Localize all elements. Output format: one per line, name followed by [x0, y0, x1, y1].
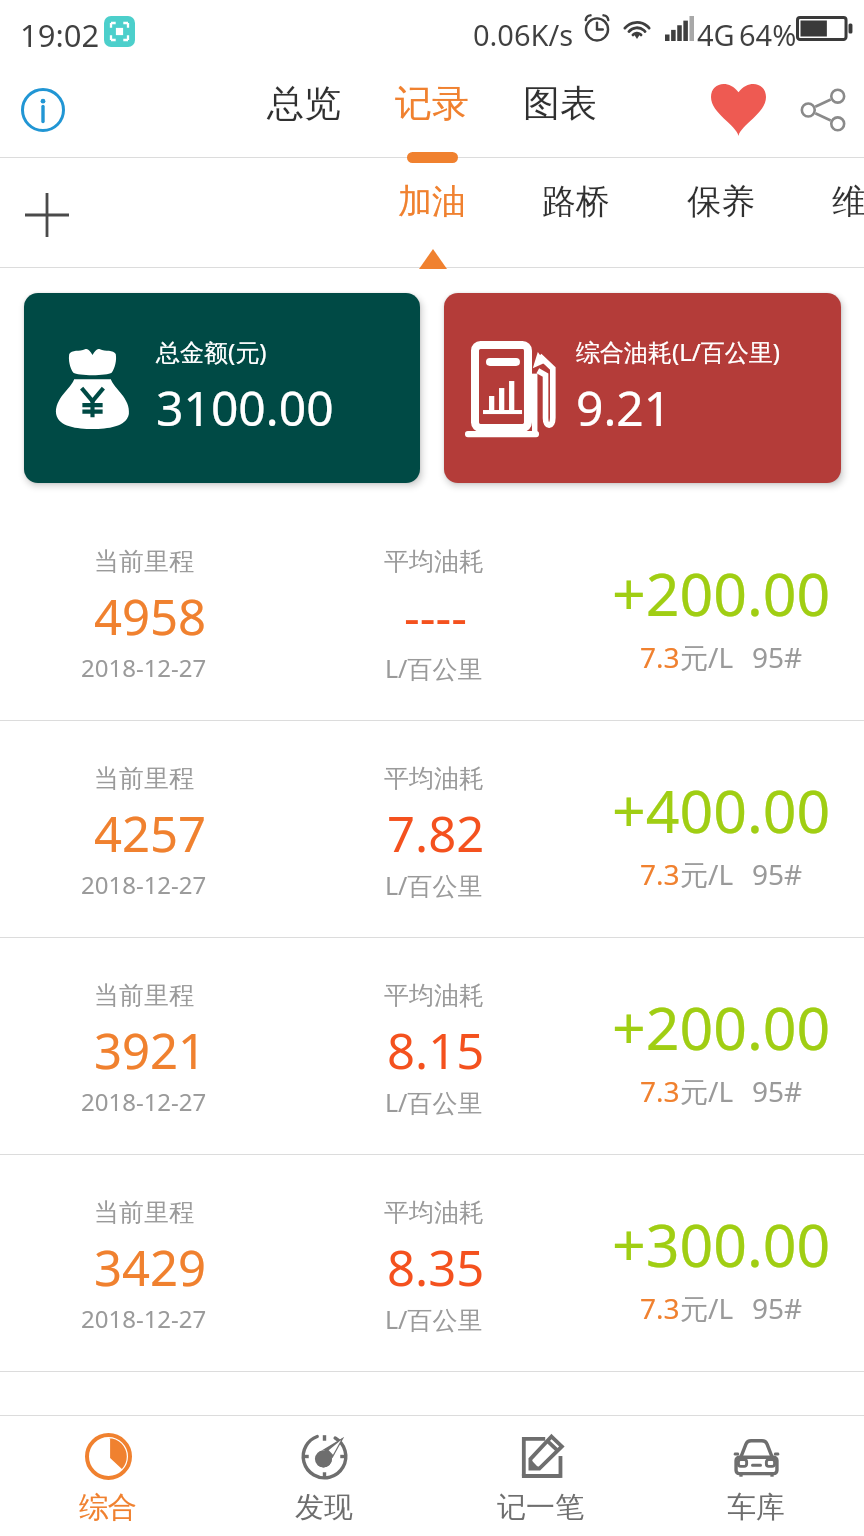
staticText: 3100.00	[156, 375, 334, 440]
button[interactable]: 车库	[648, 1416, 864, 1536]
button[interactable]: 当前里程	[0, 504, 864, 721]
staticText: 平均油耗	[384, 1197, 484, 1228]
staticText: L/百公里	[385, 1085, 483, 1119]
staticText: 7.3	[640, 1072, 680, 1110]
staticText: 64%	[739, 15, 797, 54]
staticText: 2018-12-27	[81, 868, 207, 901]
staticText: L/百公里	[385, 651, 483, 685]
staticText: 4257	[94, 800, 207, 867]
staticText: 总金额(元)	[156, 335, 267, 368]
button[interactable]: 发现	[216, 1416, 432, 1536]
staticText: 综合油耗(L/百公里)	[576, 335, 780, 368]
staticText: 2018-12-27	[81, 1302, 207, 1335]
staticText: 3429	[94, 1234, 207, 1301]
staticText: 7.3	[640, 855, 680, 893]
staticText: 95#	[752, 638, 803, 676]
button[interactable]: 当前里程	[0, 938, 864, 1155]
staticText: 平均油耗	[384, 980, 484, 1011]
staticText: 当前里程	[94, 980, 194, 1011]
staticText: 维修	[832, 180, 864, 223]
button[interactable]: 当前里程	[0, 721, 864, 938]
staticText: 0.06K/s	[473, 15, 574, 54]
staticText: 加油	[398, 180, 466, 223]
staticText: 7.82	[387, 800, 485, 867]
staticText: +200.00	[612, 987, 831, 1067]
staticText: 7.3	[640, 1289, 680, 1327]
staticText: 95#	[752, 855, 803, 893]
button[interactable]: 综合油耗(L/百公里)	[444, 293, 841, 483]
button[interactable]: 维修	[816, 158, 864, 267]
staticText: 7.3	[640, 638, 680, 676]
button[interactable]: Favorite	[696, 62, 780, 157]
staticText: 记一笔	[497, 1489, 584, 1526]
staticText: 95#	[752, 1072, 803, 1110]
staticText: 元/L	[680, 1289, 734, 1327]
staticText: 9.21	[576, 375, 672, 440]
button[interactable]: 记一笔	[432, 1416, 648, 1536]
staticText: L/百公里	[385, 1302, 483, 1336]
staticText: 3921	[94, 1017, 207, 1084]
staticText: 总览	[267, 80, 341, 127]
staticText: L/百公里	[385, 868, 483, 902]
staticText: 8.35	[387, 1234, 485, 1301]
staticText: 平均油耗	[384, 763, 484, 794]
button[interactable]: 记录	[377, 62, 487, 158]
staticText: 综合	[79, 1489, 137, 1526]
staticText: 图表	[523, 80, 597, 127]
button[interactable]: 综合	[0, 1416, 216, 1536]
button[interactable]: 总金额(元)	[24, 293, 420, 483]
button[interactable]: 图表	[505, 62, 615, 158]
staticText: 95#	[752, 1289, 803, 1327]
staticText: 车库	[727, 1489, 785, 1526]
button[interactable]: 保养	[671, 158, 771, 267]
staticText: 元/L	[680, 638, 734, 676]
staticText: 当前里程	[94, 546, 194, 577]
staticText: 2018-12-27	[81, 651, 207, 684]
staticText: ----	[404, 583, 468, 650]
staticText: 记录	[395, 80, 469, 127]
button[interactable]: 总览	[249, 62, 359, 158]
staticText: 保养	[687, 180, 755, 223]
staticText: 19:02	[20, 14, 100, 56]
staticText: 发现	[295, 1489, 353, 1526]
staticText: 元/L	[680, 1072, 734, 1110]
staticText: +300.00	[612, 1204, 831, 1284]
staticText: 当前里程	[94, 1197, 194, 1228]
staticText: 平均油耗	[384, 546, 484, 577]
button[interactable]: 当前里程	[0, 1155, 864, 1372]
staticText: +400.00	[612, 770, 831, 850]
staticText: 元/L	[680, 855, 734, 893]
staticText: +200.00	[612, 553, 831, 633]
button[interactable]: 加油	[382, 158, 482, 267]
staticText: 8.15	[387, 1017, 485, 1084]
staticText: 路桥	[542, 180, 610, 223]
button[interactable]: 路桥	[526, 158, 626, 267]
button[interactable]: Info	[0, 62, 86, 157]
button[interactable]: Add	[0, 158, 92, 267]
staticText: 当前里程	[94, 763, 194, 794]
button[interactable]: Share	[782, 62, 864, 157]
staticText: 2018-12-27	[81, 1085, 207, 1118]
staticText: 4G	[697, 15, 735, 54]
staticText: 4958	[94, 583, 207, 650]
